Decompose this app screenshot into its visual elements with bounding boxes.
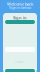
staticText: Sign in below [9, 5, 31, 10]
button[interactable] [5, 20, 35, 24]
staticText: Sign in [13, 15, 27, 20]
button[interactable] [5, 69, 35, 72]
staticText: Forgot? [15, 60, 25, 63]
staticText: Welcome back [7, 1, 33, 6]
